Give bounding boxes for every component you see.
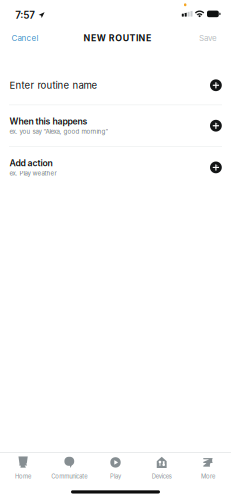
staticText: More — [201, 473, 215, 480]
button[interactable]: Save — [171, 28, 229, 48]
staticText: Cancel — [12, 33, 39, 43]
button[interactable]: Play — [92, 457, 139, 478]
staticText: Save — [199, 33, 217, 43]
button[interactable]: Enter routine name — [0, 66, 231, 104]
staticText: ex. you say “Alexa, good morning” — [9, 128, 108, 135]
button[interactable]: Add action — [0, 147, 231, 188]
button[interactable]: More — [185, 457, 231, 478]
staticText: NEW ROUTINE — [84, 33, 151, 43]
staticText: Play — [110, 473, 121, 480]
button[interactable]: Devices — [139, 457, 185, 478]
button[interactable]: Communicate — [46, 457, 92, 478]
button[interactable]: Cancel — [0, 28, 58, 48]
staticText: Communicate — [51, 473, 87, 480]
button[interactable]: When this happens — [0, 105, 231, 146]
staticText: 7:57 — [15, 9, 35, 21]
staticText: Add action — [9, 158, 52, 168]
staticText: When this happens — [9, 116, 87, 126]
button[interactable]: Home — [0, 457, 46, 478]
staticText: Home — [15, 473, 31, 480]
staticText: Enter routine name — [9, 79, 97, 91]
staticText: ex. Play weather — [9, 170, 56, 177]
staticText: Devices — [152, 473, 172, 480]
